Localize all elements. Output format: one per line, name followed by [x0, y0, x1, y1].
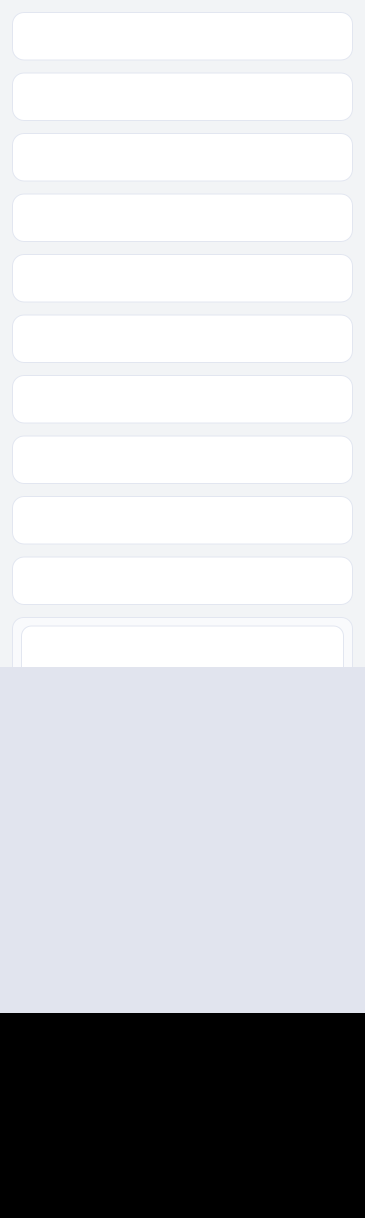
button[interactable] [12, 496, 353, 544]
button[interactable] [12, 556, 353, 605]
button[interactable] [12, 254, 353, 302]
button[interactable] [12, 133, 353, 181]
button[interactable] [12, 12, 353, 60]
button[interactable] [12, 193, 353, 242]
button[interactable] [12, 435, 353, 484]
button[interactable] [12, 314, 353, 363]
button[interactable] [12, 375, 353, 423]
button[interactable] [12, 72, 353, 121]
button[interactable] [12, 617, 353, 697]
